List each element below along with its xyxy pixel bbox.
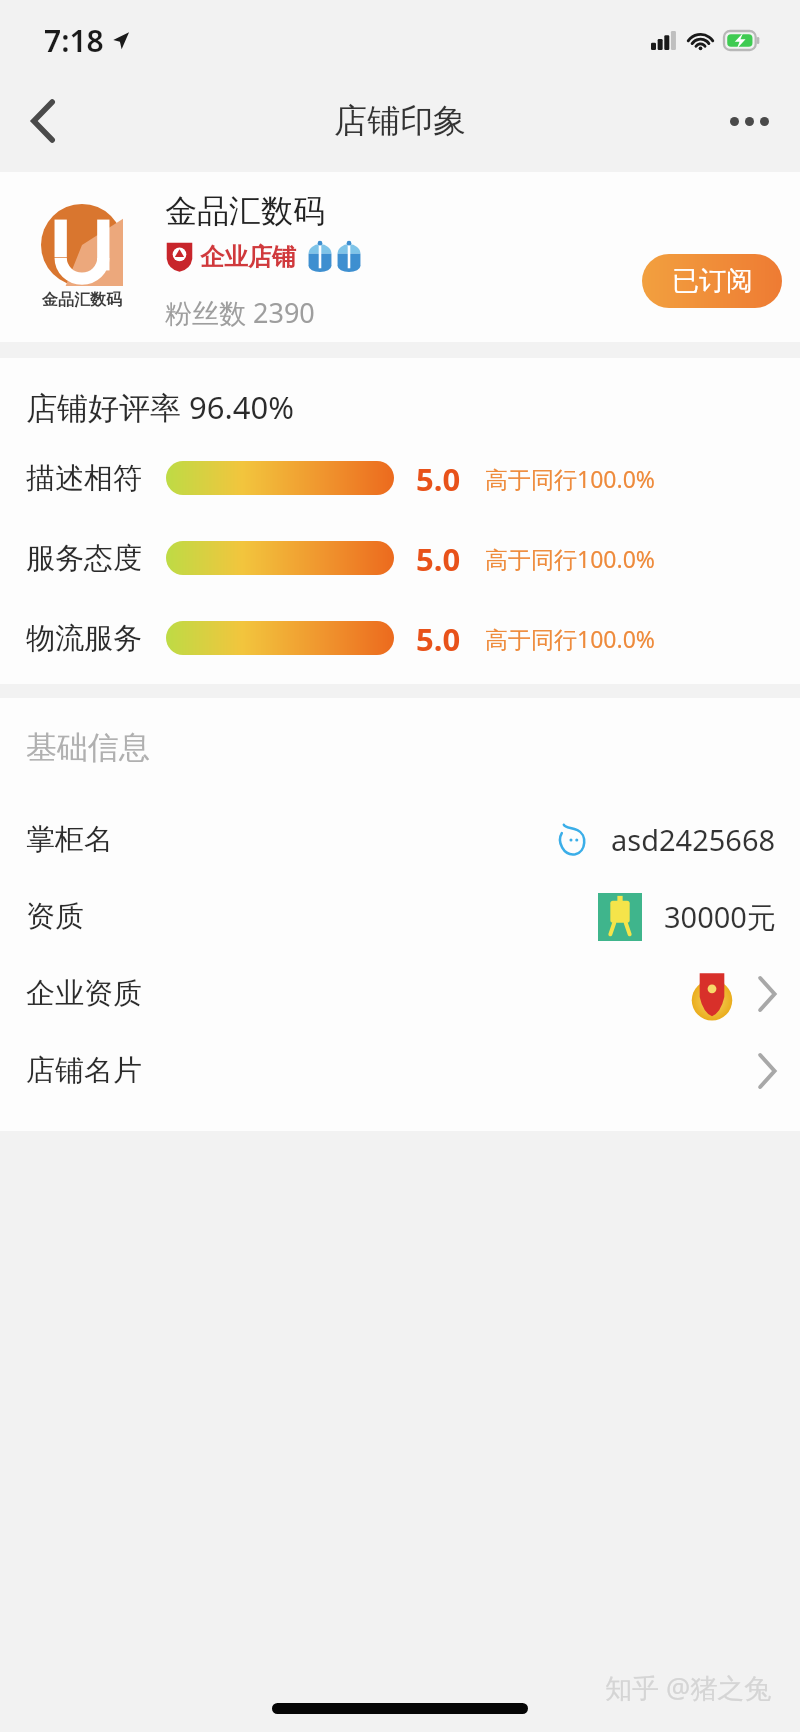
button[interactable]: 已订阅 bbox=[642, 254, 782, 308]
staticText: 店铺印象 bbox=[334, 100, 466, 142]
button[interactable]: More options bbox=[716, 88, 782, 154]
staticText: 30000元 bbox=[664, 897, 776, 937]
staticText: 企业资质 bbox=[26, 975, 142, 1012]
staticText: 金品汇数码 bbox=[165, 191, 325, 231]
staticText: 5.0 bbox=[416, 618, 461, 658]
staticText: 粉丝数 2390 bbox=[165, 294, 315, 331]
staticText: 金品汇数码 bbox=[42, 290, 122, 310]
staticText: 高于同行100.0% bbox=[485, 463, 655, 494]
staticText: 基础信息 bbox=[26, 728, 150, 767]
staticText: 服务态度 bbox=[26, 540, 142, 577]
staticText: 5.0 bbox=[416, 538, 461, 578]
staticText: 已订阅 bbox=[672, 264, 753, 298]
staticText: 店铺好评率 96.40% bbox=[26, 386, 295, 428]
button[interactable]: Back bbox=[10, 88, 76, 154]
staticText: 高于同行100.0% bbox=[485, 623, 655, 654]
staticText: asd2425668 bbox=[611, 820, 776, 859]
staticText: 掌柜名 bbox=[26, 821, 113, 858]
staticText: 描述相符 bbox=[26, 460, 142, 497]
staticText: 知乎 @猪之兔 bbox=[605, 1669, 772, 1706]
staticText: 店铺名片 bbox=[26, 1052, 142, 1089]
button[interactable]: 店铺名片 bbox=[0, 1032, 800, 1109]
staticText: 资质 bbox=[26, 898, 84, 935]
staticText: 物流服务 bbox=[26, 620, 142, 657]
staticText: 5.0 bbox=[416, 458, 461, 498]
staticText: 7:18 bbox=[44, 20, 104, 61]
staticText: 企业店铺 bbox=[200, 242, 296, 272]
staticText: 高于同行100.0% bbox=[485, 543, 655, 574]
button[interactable]: 企业资质 bbox=[0, 955, 800, 1032]
